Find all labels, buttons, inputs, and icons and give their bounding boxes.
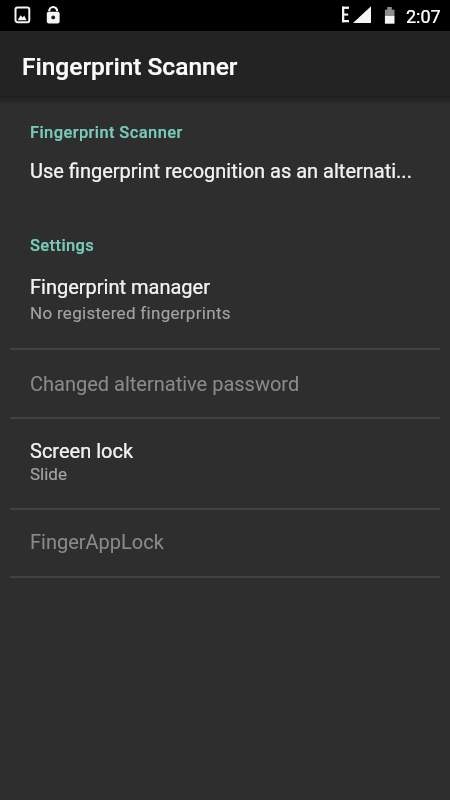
staticText: No registered fingerprints	[30, 303, 231, 323]
button[interactable]	[0, 417, 450, 508]
button[interactable]	[0, 508, 450, 576]
staticText: Slide	[30, 464, 67, 484]
staticText: 2:07	[406, 6, 441, 27]
staticText: Settings	[30, 236, 95, 255]
staticText: FingerAppLock	[30, 530, 164, 553]
staticText: Screen lock	[30, 439, 134, 462]
staticText: Fingerprint manager	[30, 275, 210, 298]
staticText: Fingerprint Scanner	[22, 52, 238, 81]
button[interactable]	[0, 258, 450, 348]
staticText: Fingerprint Scanner	[30, 123, 183, 142]
button[interactable]	[0, 348, 450, 417]
staticText: Changed alternative password	[30, 372, 300, 395]
staticText: Use fingerprint recognition as an altern…	[30, 159, 412, 182]
